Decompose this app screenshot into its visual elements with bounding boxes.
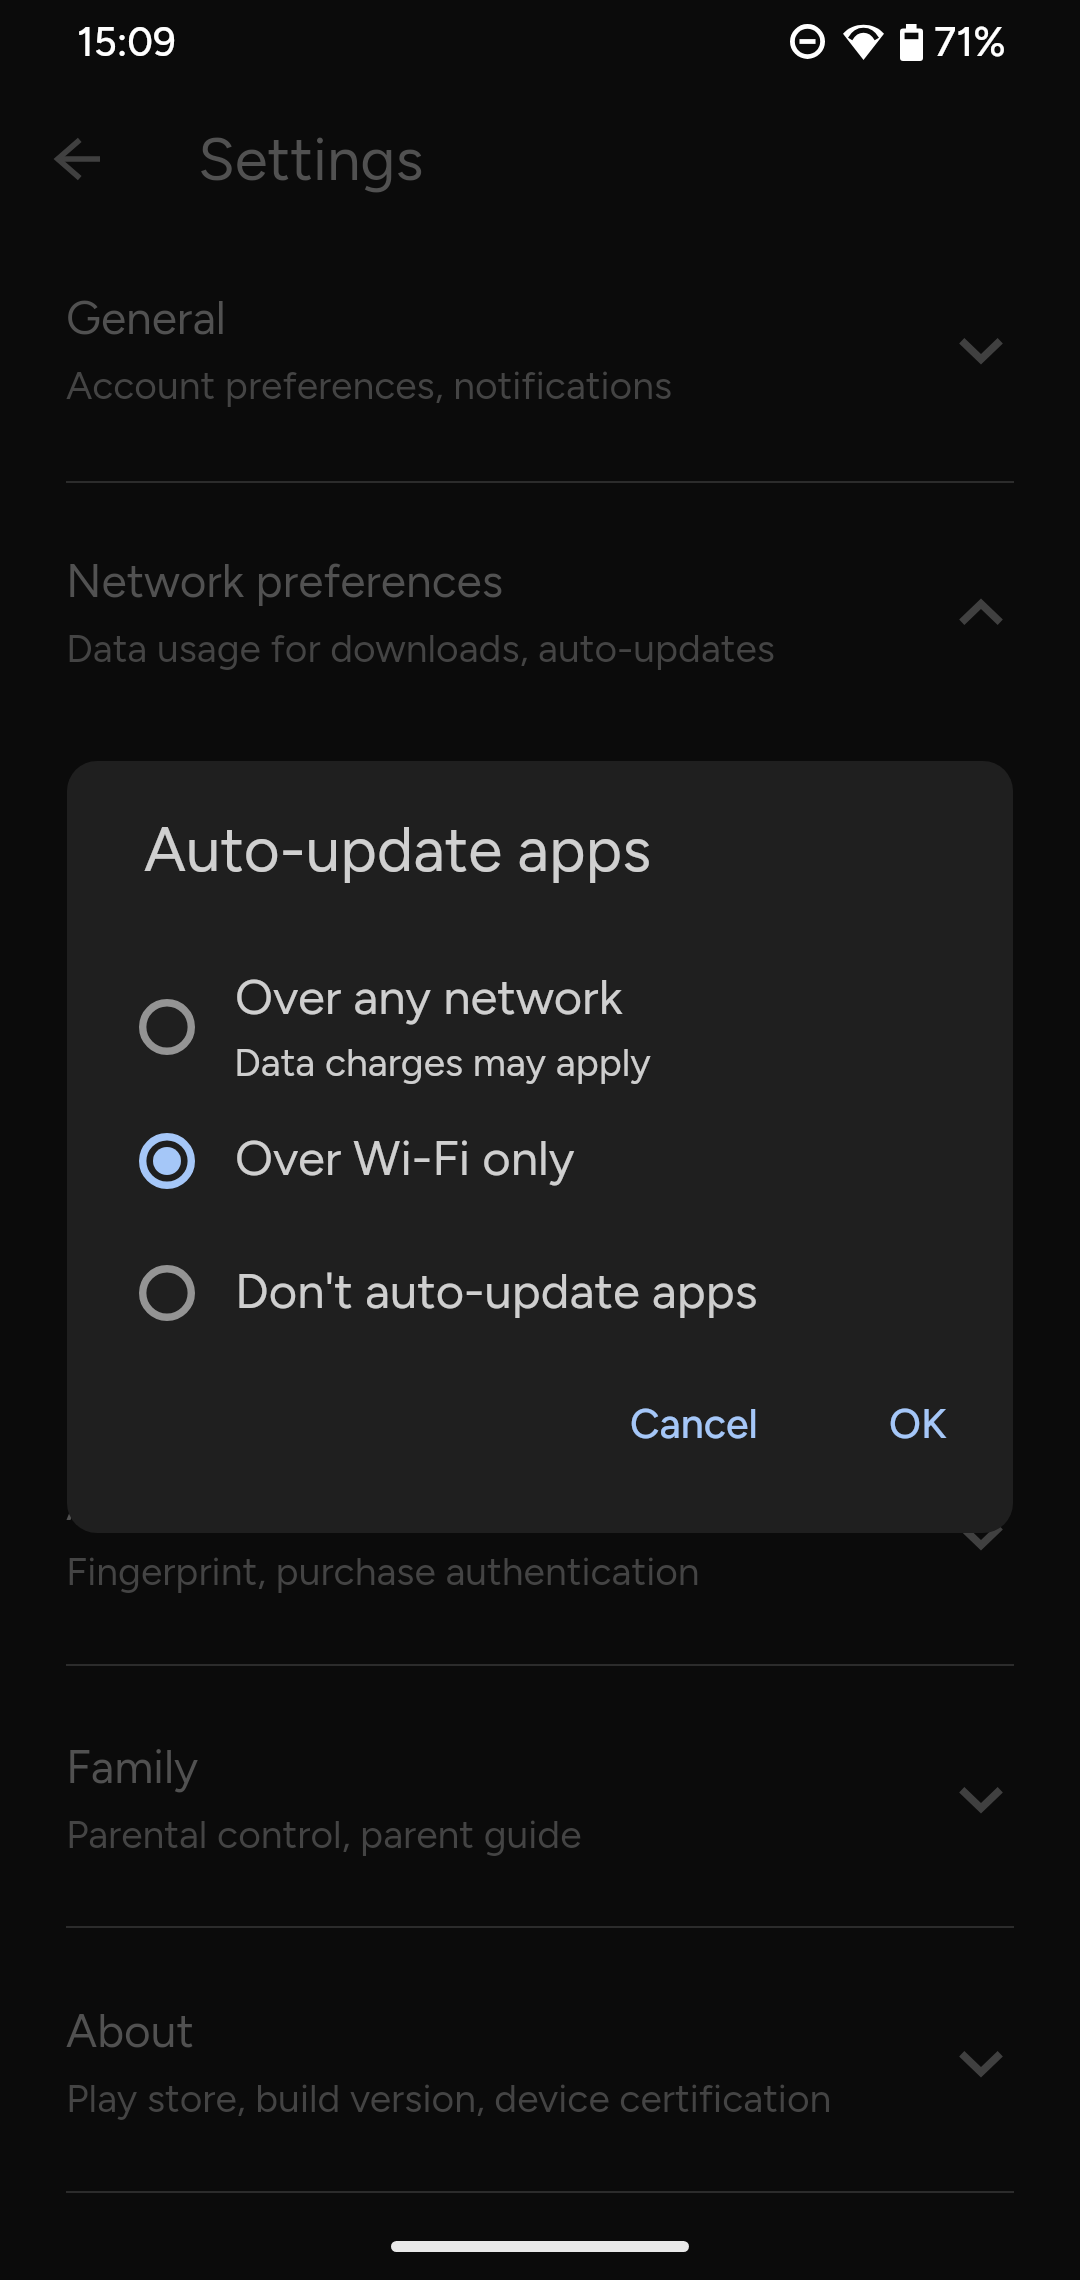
button[interactable]: About: [0, 1930, 1080, 2193]
staticText: Settings: [198, 123, 424, 195]
staticText: Over Wi-Fi only: [235, 1128, 575, 1187]
button[interactable]: Family: [0, 1666, 1080, 1929]
staticText: Don't auto-update apps: [235, 1261, 758, 1320]
staticText: General: [66, 290, 226, 345]
staticText: Family: [66, 1739, 199, 1794]
other: Battery 71 percent: [900, 24, 923, 61]
staticText: Account preferences, notifications: [66, 362, 673, 409]
button[interactable]: Network preferences: [0, 480, 1080, 743]
other: Wi-Fi: [843, 24, 884, 60]
staticText: 15:09: [77, 18, 176, 66]
button[interactable]: Don't auto-update apps: [67, 1226, 1013, 1358]
button[interactable]: Back: [35, 117, 119, 201]
staticText: About: [66, 2003, 194, 2058]
staticText: Cancel: [630, 1399, 758, 1448]
button[interactable]: Authentication: [0, 1403, 1080, 1666]
staticText: Parental control, parent guide: [66, 1811, 582, 1858]
staticText: Play store, build version, device certif…: [66, 2075, 832, 2122]
staticText: Over any network: [235, 967, 623, 1026]
button[interactable]: Cancel: [610, 1375, 778, 1471]
staticText: Network preferences: [66, 553, 504, 608]
staticText: Data usage for downloads, auto-updates: [66, 625, 775, 672]
staticText: Fingerprint, purchase authentication: [66, 1548, 700, 1595]
staticText: Auto-update apps: [144, 812, 652, 886]
staticText: 71%: [934, 17, 1006, 66]
other: Do not disturb: [790, 24, 825, 59]
staticText: Data charges may apply: [234, 1039, 651, 1086]
staticText: OK: [889, 1399, 947, 1448]
button[interactable]: General: [0, 217, 1080, 480]
button[interactable]: Over Wi-Fi only: [67, 1094, 1013, 1226]
button[interactable]: Over any network: [67, 960, 1013, 1094]
button[interactable]: OK: [870, 1375, 966, 1471]
